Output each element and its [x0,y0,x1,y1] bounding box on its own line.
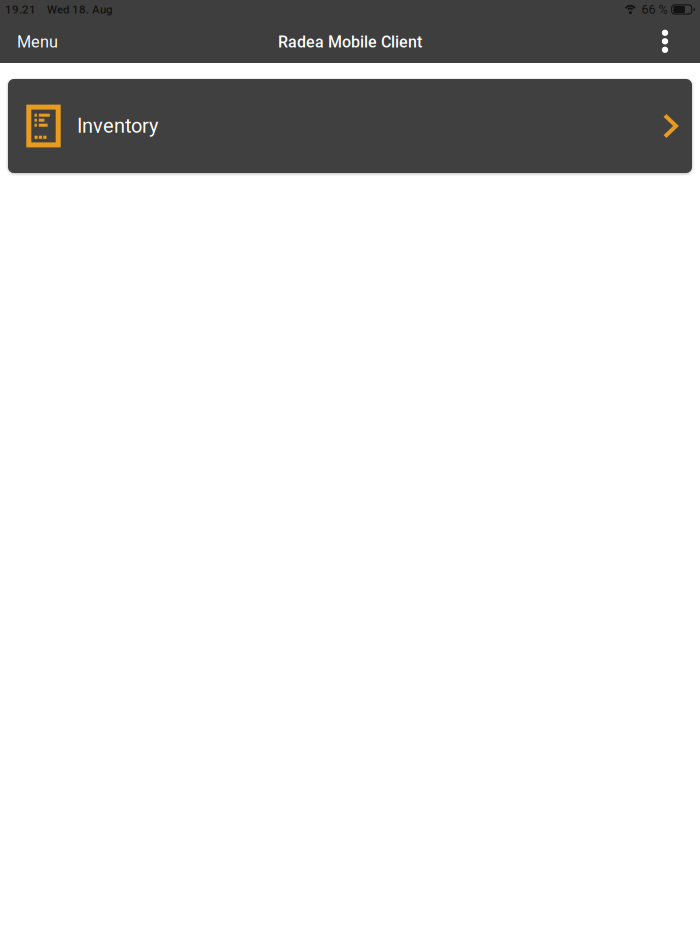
staticText: 19.21 [5,3,36,16]
button[interactable]: More options [644,21,686,63]
staticText: Wed 18. Aug [47,3,113,16]
staticText: Inventory [77,114,158,138]
button[interactable]: Inventory [8,79,692,173]
staticText: Radea Mobile Client [278,33,422,51]
button[interactable]: Menu [0,21,74,63]
staticText: 66 % [642,2,668,17]
staticText: Menu [17,32,58,52]
